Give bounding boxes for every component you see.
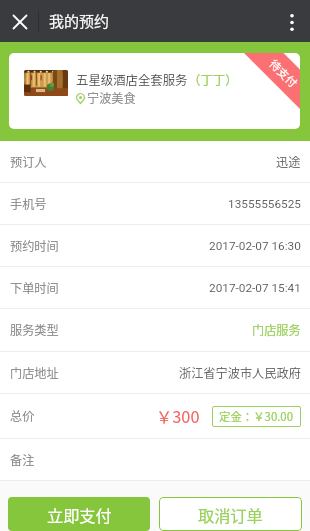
staticText: 我的预约 [49, 10, 110, 32]
button[interactable]: 取消订单 [159, 497, 302, 531]
staticText: 13555556525 [228, 197, 301, 211]
staticText: 五星级酒店全套服务 [76, 71, 188, 89]
staticText: 取消订单 [198, 503, 263, 526]
staticText: （丁丁） [188, 71, 238, 89]
staticText: 浙江省宁波市人民政府 [179, 364, 301, 382]
button[interactable]: Close [0, 0, 39, 42]
button[interactable]: 五星级酒店全套服务 [9, 53, 300, 129]
staticText: 迅途 [276, 153, 301, 171]
staticText: 预订人 [10, 153, 47, 171]
staticText: 立即支付 [47, 503, 112, 526]
staticText: 总价 [10, 407, 35, 425]
button[interactable]: More options [271, 0, 310, 42]
staticText: 待支付 [266, 55, 300, 91]
staticText: ￥300 [156, 404, 200, 428]
staticText: 门店服务 [252, 321, 301, 339]
staticText: 服务类型 [10, 321, 59, 339]
staticText: 定金：￥30.00 [219, 408, 294, 425]
staticText: 2017-02-07 15:41 [209, 281, 301, 295]
staticText: 宁波美食 [87, 89, 136, 107]
button[interactable]: 立即支付 [8, 497, 150, 531]
staticText: 2017-02-07 16:30 [209, 239, 301, 253]
staticText: 预约时间 [10, 237, 59, 255]
staticText: 备注 [10, 451, 35, 469]
staticText: 手机号 [10, 195, 47, 213]
staticText: 门店地址 [10, 364, 59, 382]
staticText: 下单时间 [10, 279, 59, 297]
